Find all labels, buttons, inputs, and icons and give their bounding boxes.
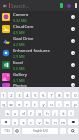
button[interactable]: z (12, 119, 18, 125)
staticText: Excel (13, 60, 23, 66)
button[interactable]: Shift (1, 119, 10, 125)
button[interactable]: s (12, 110, 18, 116)
button[interactable]: Download (71, 83, 75, 87)
button[interactable]: m (60, 119, 66, 125)
staticText: Camera (13, 12, 29, 18)
staticText: z (14, 120, 16, 125)
staticText: Photos (13, 83, 27, 87)
button[interactable]: Photos (0, 83, 79, 87)
button[interactable]: Download (71, 27, 75, 31)
staticText: Search... (11, 3, 30, 9)
button[interactable]: English (US) (22, 128, 58, 134)
button[interactable]: 5 (32, 92, 38, 98)
staticText: k (62, 111, 65, 116)
button[interactable]: Download (71, 39, 75, 43)
staticText: h (46, 111, 49, 116)
staticText: CloudCam (13, 24, 34, 30)
staticText: Enhanced features (13, 48, 50, 54)
staticText: b (46, 120, 49, 125)
button[interactable]: 1 (1, 92, 6, 98)
button[interactable]: Download (71, 15, 75, 19)
staticText: 3.1 MB (13, 78, 25, 83)
staticText: . (62, 129, 64, 134)
staticText: o (66, 102, 69, 107)
staticText: p (74, 102, 77, 107)
staticText: 9 (66, 93, 69, 98)
button[interactable]: 3 (16, 92, 22, 98)
button[interactable]: q (1, 101, 6, 107)
button[interactable]: 6 (40, 92, 46, 98)
staticText: c (30, 120, 32, 125)
button[interactable]: Backspace (68, 119, 78, 125)
staticText: 9.32 MB (13, 18, 27, 23)
button[interactable]: Camera (0, 11, 79, 23)
button[interactable]: ?123 (1, 128, 12, 134)
staticText: 8 (58, 93, 61, 98)
button[interactable]: j (52, 110, 58, 116)
button[interactable]: t (32, 101, 38, 107)
button[interactable]: x (20, 119, 26, 125)
button[interactable]: g (36, 110, 42, 116)
button[interactable]: a (5, 110, 10, 116)
staticText: r (26, 102, 28, 107)
button[interactable]: 9 (64, 92, 70, 98)
staticText: v (38, 120, 41, 125)
staticText: 5.6 MB (13, 66, 25, 71)
button[interactable]: u (48, 101, 54, 107)
staticText: Gallery (13, 72, 27, 78)
button[interactable]: o (64, 101, 70, 107)
button[interactable]: 4 (24, 92, 30, 98)
staticText: f (30, 111, 32, 116)
button[interactable]: Goal Drive (0, 35, 79, 47)
button[interactable]: b (44, 119, 50, 125)
staticText: Goal Drive (13, 36, 34, 42)
button[interactable]: c (28, 119, 34, 125)
button[interactable]: v (36, 119, 42, 125)
staticText: ?123 (4, 129, 10, 133)
button[interactable]: k (60, 110, 66, 116)
button[interactable]: CloudCam (0, 23, 79, 35)
staticText: q (2, 102, 5, 107)
button[interactable]: 2 (8, 92, 14, 98)
button[interactable]: Emoji (14, 128, 20, 134)
button[interactable]: Excel (0, 59, 79, 71)
staticText: m (61, 120, 65, 125)
staticText: 4 (26, 93, 29, 98)
button[interactable]: Gallery (0, 71, 79, 83)
staticText: 6 (42, 93, 45, 98)
button[interactable]: f (28, 110, 34, 116)
button[interactable]: l (68, 110, 74, 116)
button[interactable]: e (16, 101, 22, 107)
staticText: a (6, 111, 9, 116)
staticText: s (14, 111, 16, 116)
staticText: 2 (10, 93, 13, 98)
button[interactable]: n (52, 119, 58, 125)
button[interactable]: w (8, 101, 14, 107)
button[interactable]: d (20, 110, 26, 116)
button[interactable]: Download (71, 75, 75, 79)
staticText: l (70, 111, 72, 116)
button[interactable]: Search (68, 128, 78, 134)
button[interactable]: p (72, 101, 78, 107)
button[interactable]: Back (0, 0, 9, 11)
button[interactable]: 7 (48, 92, 54, 98)
button[interactable]: i (56, 101, 62, 107)
staticText: English (US) (33, 129, 48, 133)
button[interactable]: y (40, 101, 46, 107)
button[interactable]: Download (71, 51, 75, 55)
staticText: d (22, 111, 25, 116)
button[interactable]: 0 (72, 92, 78, 98)
button[interactable]: Enhanced features (0, 47, 79, 59)
staticText: u (50, 102, 53, 107)
staticText: y (42, 102, 45, 107)
staticText: 3 (18, 93, 21, 98)
button[interactable]: 8 (56, 92, 62, 98)
button[interactable]: . (60, 128, 66, 134)
button[interactable]: Download (71, 63, 75, 67)
staticText: 4.5 MB (13, 30, 25, 35)
button[interactable]: r (24, 101, 30, 107)
staticText: w (9, 102, 13, 107)
staticText: 4.2 MB (13, 42, 25, 47)
button[interactable]: h (44, 110, 50, 116)
staticText: g (38, 111, 41, 116)
